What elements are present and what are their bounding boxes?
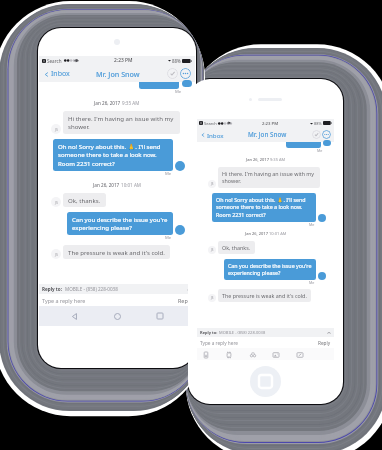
button[interactable]: Hi there. I'm having an issue with my sh…: [218, 167, 320, 188]
button[interactable]: Edit: [295, 350, 304, 359]
staticText: Jan 26, 2017: [245, 231, 268, 236]
staticText: Reply: [318, 340, 331, 346]
button[interactable]: Home: [250, 366, 281, 397]
staticText: 88%: [314, 121, 322, 126]
staticText: 10:01 AM: [269, 231, 287, 236]
staticText: 2:23 PM: [114, 57, 133, 64]
button[interactable]: More options: [322, 130, 331, 139]
button[interactable]: Ok, thanks.: [63, 193, 106, 207]
staticText: Inbox: [207, 131, 224, 139]
staticText: Ok, thanks.: [68, 196, 101, 204]
button[interactable]: Attach file: [201, 350, 210, 359]
button[interactable]: Snippets: [224, 350, 233, 359]
staticText: Reply: [178, 297, 192, 304]
staticText: Can you describe the issue you're experi…: [228, 262, 312, 277]
staticText: Jan 26, 2017: [94, 100, 121, 106]
button[interactable]: The pressure is weak and it's cold.: [63, 245, 170, 259]
button[interactable]: Mark resolved: [167, 68, 178, 79]
staticText: JS: [55, 200, 58, 205]
button[interactable]: Oh no! Sorry about this. 🙏. I'll send so…: [53, 139, 173, 171]
staticText: The pressure is weak and it's cold.: [68, 248, 165, 256]
button[interactable]: Oh no! Sorry about this. 🙏. I'll send so…: [212, 193, 316, 222]
staticText: Me: [309, 280, 315, 285]
button[interactable]: Image: [271, 350, 280, 359]
staticText: Ok, thanks.: [222, 244, 251, 251]
button[interactable]: Can you describe the issue you're experi…: [224, 259, 316, 280]
staticText: Oh no! Sorry about this. 🙏. I'll send so…: [216, 196, 312, 219]
button[interactable]: Hi there. I'm having an issue with my sh…: [63, 111, 180, 134]
staticText: MOBILE - (858) 228-0038: [219, 330, 266, 335]
staticText: Can you describe the issue you're experi…: [72, 215, 168, 232]
staticText: 9:35 AM: [122, 100, 140, 106]
staticText: The pressure is weak and it's cold.: [222, 292, 307, 299]
staticText: Hi there. I'm having an issue with my sh…: [222, 170, 316, 185]
button[interactable]: Inbox: [43, 69, 70, 79]
staticText: Search: [204, 121, 217, 126]
staticText: Me: [309, 222, 315, 227]
staticText: JS: [211, 296, 214, 300]
staticText: Reply to:: [42, 286, 63, 292]
button[interactable]: Recent apps: [152, 308, 168, 324]
staticText: Me: [175, 89, 182, 95]
staticText: Inbox: [51, 69, 70, 79]
staticText: 10:01 AM: [121, 182, 142, 188]
button[interactable]: The pressure is weak and it's cold.: [218, 289, 311, 302]
staticText: Oh no! Sorry about this. 🙏. I'll send so…: [58, 142, 168, 168]
staticText: MOBILE - (858) 228-0038: [65, 286, 118, 292]
staticText: JS: [211, 182, 214, 186]
staticText: Me: [317, 148, 323, 153]
staticText: Type a reply here: [42, 297, 86, 304]
staticText: 2:23 PM: [262, 120, 279, 126]
staticText: Mr. Jon Snow: [248, 130, 287, 139]
staticText: Jan 26, 2017: [93, 182, 120, 188]
staticText: Type a reply here: [200, 340, 238, 346]
staticText: 9:35 AM: [270, 157, 286, 162]
staticText: Reply to:: [200, 330, 218, 335]
staticText: 88%: [172, 58, 181, 64]
button[interactable]: Can you describe the issue you're experi…: [67, 212, 173, 235]
button[interactable]: Mark resolved: [312, 130, 321, 139]
staticText: Me: [165, 171, 172, 177]
button[interactable]: Ok, thanks.: [218, 241, 255, 254]
button[interactable]: Search: [248, 350, 257, 359]
staticText: Hi there. I'm having an issue with my sh…: [68, 114, 175, 131]
staticText: Mr. Jon Snow: [96, 69, 140, 79]
button[interactable]: Inbox: [200, 131, 224, 139]
staticText: Search: [47, 58, 62, 64]
button[interactable]: Back: [66, 308, 82, 324]
staticText: JS: [55, 252, 58, 257]
staticText: JS: [55, 127, 58, 132]
staticText: JS: [211, 248, 214, 252]
staticText: Jan 26, 2017: [246, 157, 269, 162]
button[interactable]: Home: [109, 308, 125, 324]
button[interactable]: More options: [180, 68, 191, 79]
staticText: Me: [165, 235, 172, 241]
